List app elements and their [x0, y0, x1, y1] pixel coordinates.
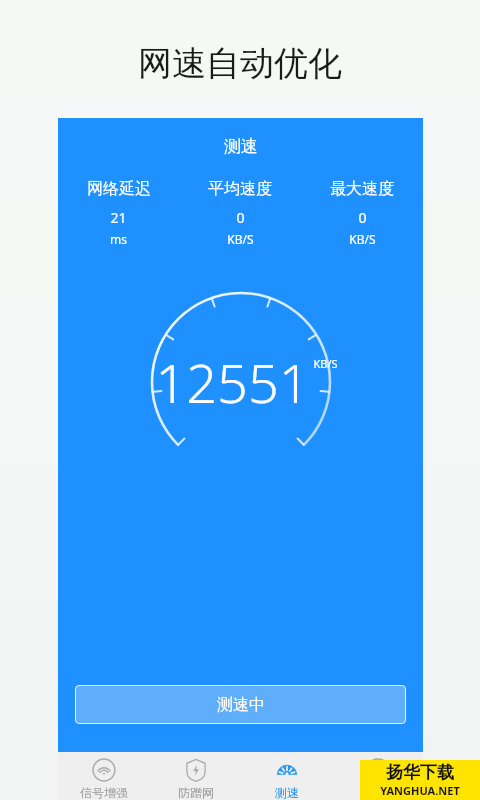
staticText: 网络延迟	[87, 179, 151, 199]
staticText: 0	[358, 208, 367, 227]
button[interactable]: 信号增强	[58, 752, 150, 800]
staticText: 12551	[155, 345, 310, 419]
staticText: 扬华下载	[386, 762, 454, 783]
staticText: 0	[236, 208, 245, 227]
staticText: KB/S	[313, 356, 338, 371]
staticText: KB/S	[227, 231, 254, 247]
staticText: 21	[110, 208, 127, 227]
staticText: KB/S	[349, 231, 376, 247]
button[interactable]: 更多	[332, 752, 423, 800]
button[interactable]: 测速中	[75, 685, 406, 724]
button[interactable]: 测速	[241, 752, 332, 800]
staticText: 防蹭网	[178, 785, 214, 800]
staticText: 测速中	[217, 695, 265, 715]
staticText: 网速自动优化	[138, 42, 342, 85]
button[interactable]: 防蹭网	[150, 752, 241, 800]
staticText: 平均速度	[208, 179, 272, 199]
staticText: YANGHUA.NET	[380, 783, 460, 798]
staticText: ms	[110, 231, 127, 247]
staticText: 测速	[275, 785, 299, 800]
staticText: 测速	[224, 136, 258, 157]
staticText: 最大速度	[330, 179, 394, 199]
staticText: 更多	[366, 785, 390, 800]
staticText: 信号增强	[80, 785, 128, 800]
